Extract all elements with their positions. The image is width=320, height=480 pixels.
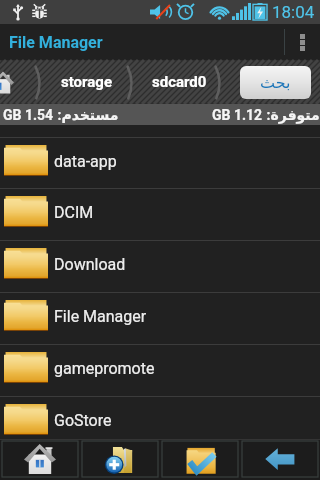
staticText: File Manager — [9, 33, 103, 52]
button[interactable]: data-app — [0, 137, 320, 189]
staticText: Download — [54, 255, 126, 274]
staticText: :متوفرة — [263, 107, 320, 123]
button[interactable]: Back — [242, 441, 318, 477]
button[interactable]: بحث — [240, 66, 311, 99]
button[interactable]: File Manager — [0, 292, 320, 344]
button[interactable]: Home — [2, 441, 78, 477]
button[interactable]: More options — [285, 24, 320, 60]
staticText: GB 1.54 — [3, 107, 54, 123]
staticText: DCIM — [54, 203, 94, 222]
button[interactable]: New folder — [82, 441, 158, 477]
button[interactable]: Select all — [162, 441, 238, 477]
staticText: بحث — [260, 73, 291, 92]
button[interactable]: storage — [61, 73, 112, 91]
staticText: GB 1.12 — [212, 107, 263, 123]
staticText: :مستخدم — [54, 107, 119, 123]
button[interactable]: Root folder — [0, 60, 26, 104]
button[interactable]: gamepromote — [0, 344, 320, 396]
button[interactable]: sdcard0 — [152, 73, 207, 91]
staticText: File Manager — [54, 307, 147, 326]
staticText: GoStore — [54, 411, 112, 430]
staticText: 18:04 — [272, 2, 315, 22]
button[interactable]: Download — [0, 240, 320, 292]
button[interactable]: DCIM — [0, 188, 320, 240]
staticText: gamepromote — [54, 359, 155, 378]
staticText: data-app — [54, 152, 117, 171]
button[interactable]: GoStore — [0, 396, 320, 448]
